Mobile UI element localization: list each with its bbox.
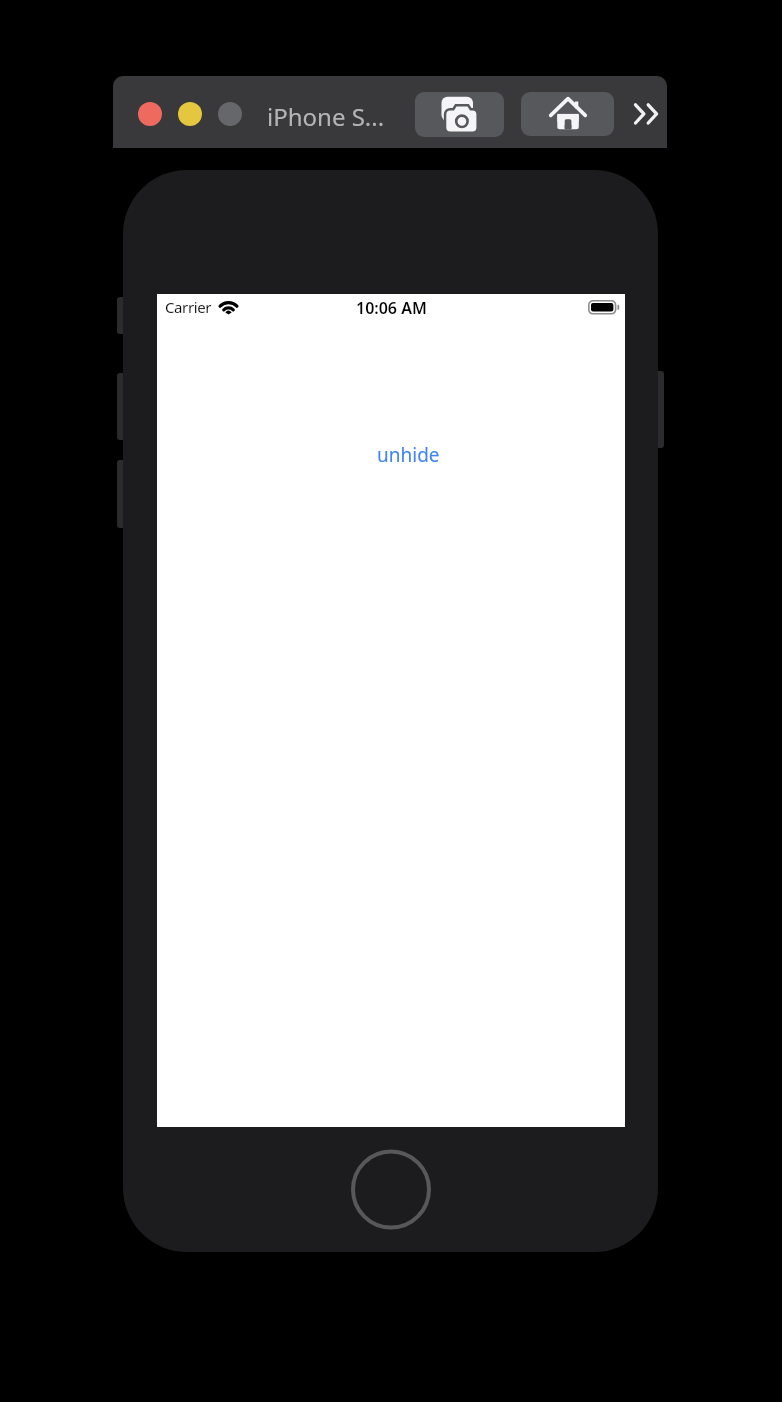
button[interactable] xyxy=(632,103,662,125)
button[interactable] xyxy=(178,102,202,126)
staticText: unhide xyxy=(377,442,440,468)
staticText: 10:06 AM xyxy=(356,297,427,319)
staticText: Carrier xyxy=(165,297,212,317)
button[interactable] xyxy=(138,102,162,126)
button[interactable] xyxy=(346,1144,436,1234)
button[interactable] xyxy=(415,92,504,137)
button[interactable]: unhide xyxy=(377,442,440,468)
button[interactable] xyxy=(521,92,614,136)
button[interactable] xyxy=(218,102,242,126)
staticText: iPhone S... xyxy=(267,100,385,133)
